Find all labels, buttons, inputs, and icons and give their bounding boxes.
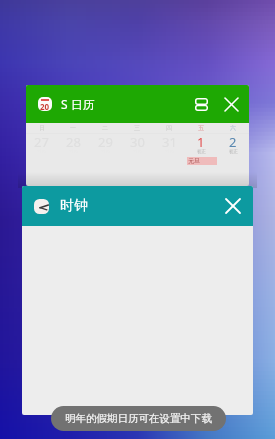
staticText: 六 [230,124,236,132]
staticText: 20 [40,101,50,111]
staticText: 五 [198,124,204,132]
button[interactable]: 时钟 [22,186,253,226]
staticText: 明年的假期日历可在设置中下载 [65,412,212,425]
button[interactable]: Close [216,89,246,119]
staticText: 元旦 [188,157,200,165]
button[interactable]: 20 [26,85,249,123]
staticText: 1 [197,133,205,151]
button[interactable]: Close [217,190,249,222]
staticText: 三 [134,124,140,132]
staticText: 初正 [197,149,206,155]
staticText: 初正 [229,149,238,155]
staticText: 29 [98,133,113,151]
button[interactable]: Split screen [186,89,216,119]
staticText: 30 [130,133,145,151]
staticText: 27 [34,133,49,151]
button[interactable]: 明年的假期日历可在设置中下载 [51,406,226,431]
staticText: 31 [162,133,177,151]
staticText: 二 [102,124,108,132]
staticText: S 日历 [61,96,95,112]
staticText: 日 [39,124,45,132]
staticText: 四 [166,124,172,132]
staticText: 28 [66,133,81,151]
staticText: 一 [70,124,76,132]
staticText: 时钟 [60,197,88,215]
staticText: 2 [229,133,237,151]
